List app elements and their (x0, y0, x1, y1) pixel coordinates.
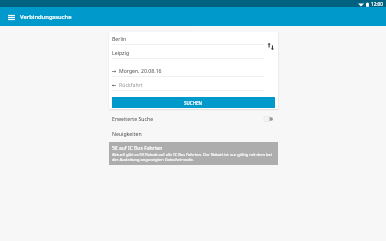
staticText: 12:00 (371, 1, 383, 7)
button[interactable]: Rückfahrt (109, 77, 278, 91)
button[interactable]: Swap origin and destination (261, 37, 278, 54)
button[interactable]: Berlin (109, 32, 278, 45)
staticText: Aktuell gibt es 5€ Rabatt auf alle IC Bu… (112, 152, 275, 162)
button[interactable]: Erweiterte Suche (109, 109, 278, 128)
button[interactable]: Leipzig (109, 45, 278, 59)
staticText: Leipzig (112, 49, 130, 56)
staticText: Erweiterte Suche (112, 115, 154, 122)
staticText: 5€ auf IC Bus Fahrten (112, 145, 163, 152)
button[interactable]: Morgen, 20.08.16 (109, 63, 278, 77)
button[interactable]: Open navigation menu (4, 10, 18, 24)
staticText: Rückfahrt (119, 81, 143, 88)
button[interactable]: 5€ auf IC Bus Fahrten (109, 142, 278, 165)
staticText: Verbindungssuche (20, 13, 72, 21)
staticText: Neuigkeiten (112, 130, 142, 137)
button[interactable]: SUCHEN (112, 97, 275, 108)
staticText: SUCHEN (184, 100, 203, 106)
staticText: Morgen, 20.08.16 (119, 67, 162, 74)
staticText: Berlin (112, 35, 127, 42)
